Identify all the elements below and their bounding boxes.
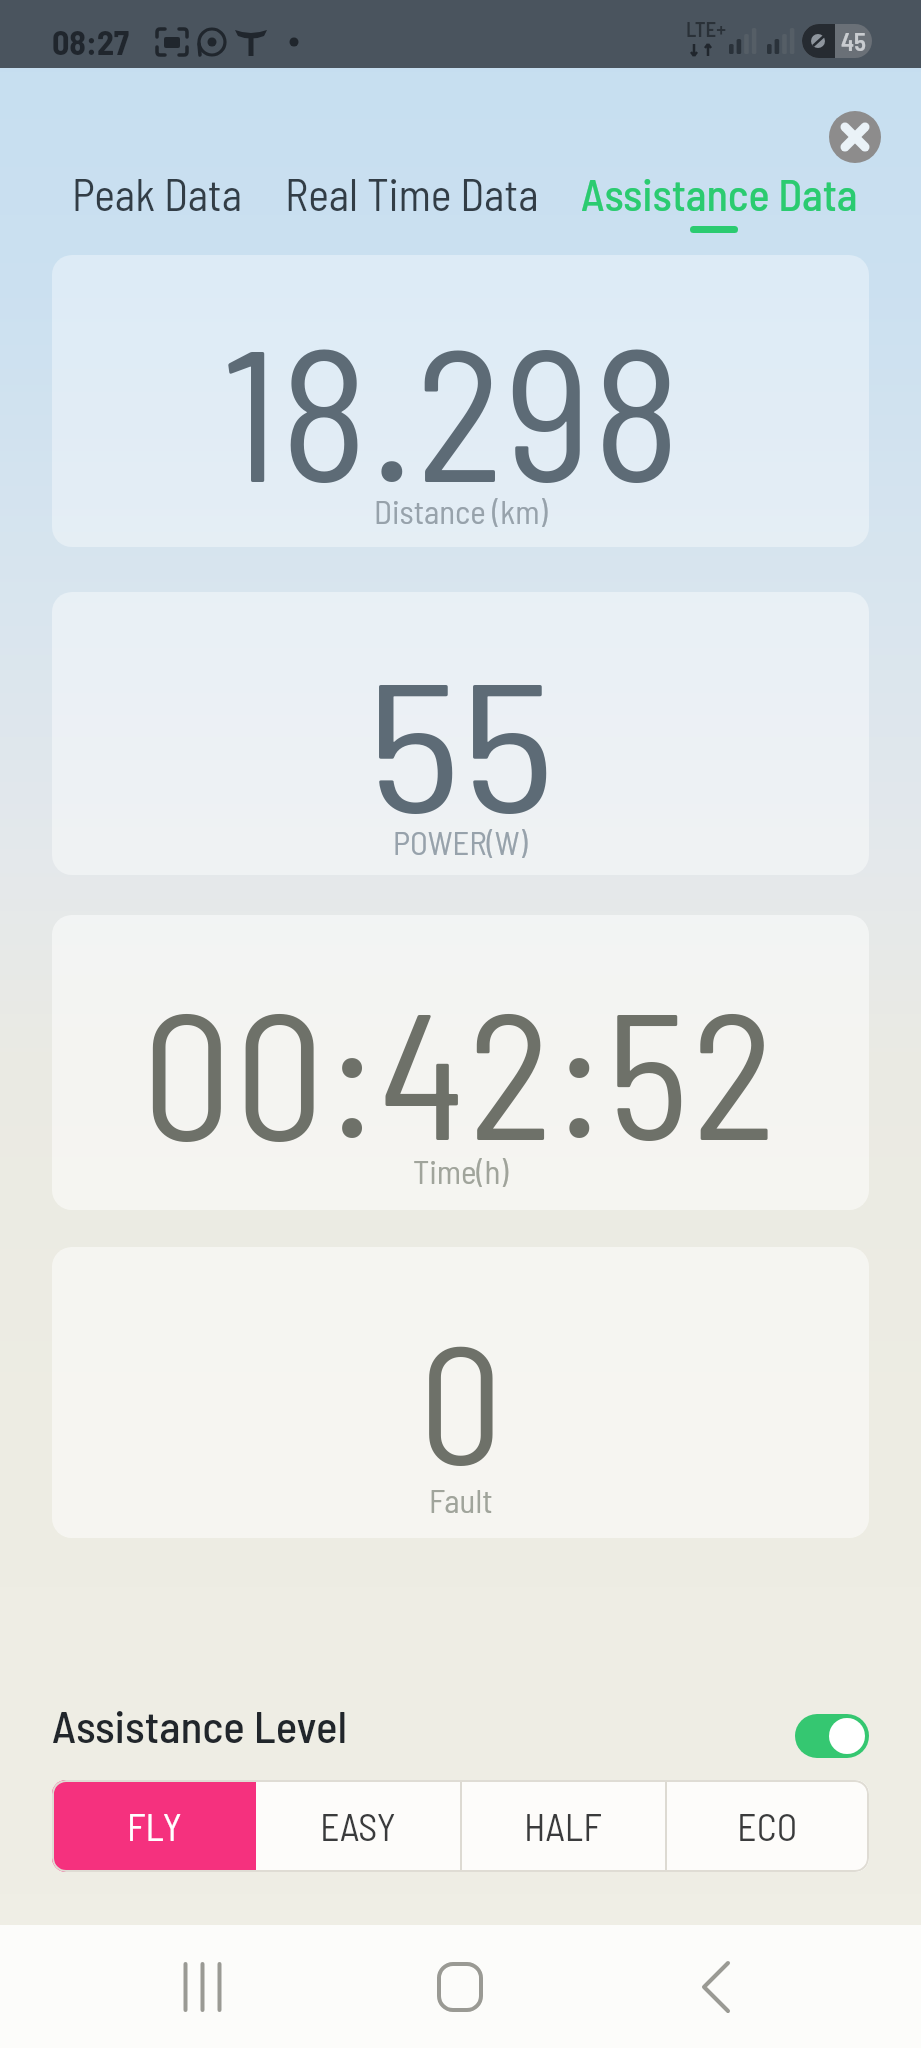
staticText: Real Time Data xyxy=(285,167,539,220)
staticText: 00:42:52 xyxy=(142,962,779,1176)
staticText: EASY xyxy=(320,1803,396,1849)
staticText: Peak Data xyxy=(72,167,243,220)
staticText: Time(h) xyxy=(413,1151,509,1191)
staticText: FLY xyxy=(127,1803,182,1849)
staticText: 08:27 xyxy=(52,21,130,62)
staticText: POWER(W) xyxy=(393,822,528,862)
staticText: Assistance Level xyxy=(52,1698,348,1752)
staticText: Fault xyxy=(429,1480,493,1520)
staticText: LTE+ xyxy=(686,16,727,41)
staticText: 0 xyxy=(419,1298,503,1497)
staticText: 55 xyxy=(367,630,555,848)
staticText: ECO xyxy=(737,1803,798,1849)
staticText: Distance (km) xyxy=(374,491,548,531)
staticText: 45 xyxy=(841,26,867,56)
staticText: Assistance Data xyxy=(581,167,858,220)
staticText: HALF xyxy=(524,1803,602,1849)
staticText: 18.298 xyxy=(222,296,683,519)
